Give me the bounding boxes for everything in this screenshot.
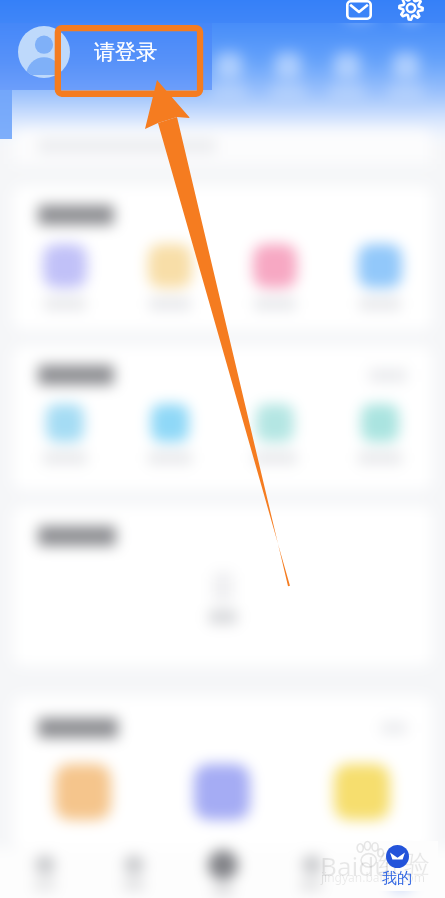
button[interactable]: 服务: [267, 855, 356, 892]
staticText: 理财: [123, 878, 145, 892]
button[interactable]: [152, 764, 292, 820]
button[interactable]: [117, 404, 222, 464]
button[interactable]: 保险: [178, 850, 267, 897]
button[interactable]: [292, 764, 432, 820]
staticText: Baidu: [320, 848, 391, 883]
button[interactable]: 理财: [89, 855, 178, 892]
staticText: jingyan.baidu.com: [321, 869, 425, 885]
button[interactable]: [324, 52, 370, 95]
button[interactable]: [222, 244, 327, 310]
button[interactable]: 请登录: [90, 33, 161, 71]
button[interactable]: Settings: [394, 0, 428, 25]
button[interactable]: [13, 244, 117, 310]
button[interactable]: [327, 404, 432, 464]
button[interactable]: [13, 764, 152, 820]
button[interactable]: 我的: [372, 842, 422, 888]
staticText: 我的: [390, 878, 412, 892]
button[interactable]: [222, 404, 327, 464]
staticText: 服务: [301, 878, 323, 892]
button[interactable]: 首页: [0, 855, 89, 892]
button[interactable]: Messages: [342, 0, 376, 27]
staticText: 请登录: [94, 39, 157, 65]
button[interactable]: [117, 244, 222, 310]
staticText: 保险: [212, 883, 234, 897]
button[interactable]: [13, 128, 432, 164]
button[interactable]: [327, 244, 432, 310]
staticText: 首页: [34, 878, 56, 892]
button[interactable]: [265, 52, 311, 95]
button[interactable]: [206, 52, 252, 95]
button[interactable]: 我的: [356, 855, 445, 892]
staticText: 我的: [382, 869, 412, 888]
button[interactable]: Messages: [342, 0, 376, 27]
staticText: 经验: [378, 848, 430, 881]
button[interactable]: [13, 404, 117, 464]
staticText: 请登录: [94, 39, 157, 65]
button[interactable]: Settings: [394, 0, 428, 25]
button[interactable]: 请登录: [90, 33, 161, 71]
button[interactable]: [383, 52, 429, 95]
